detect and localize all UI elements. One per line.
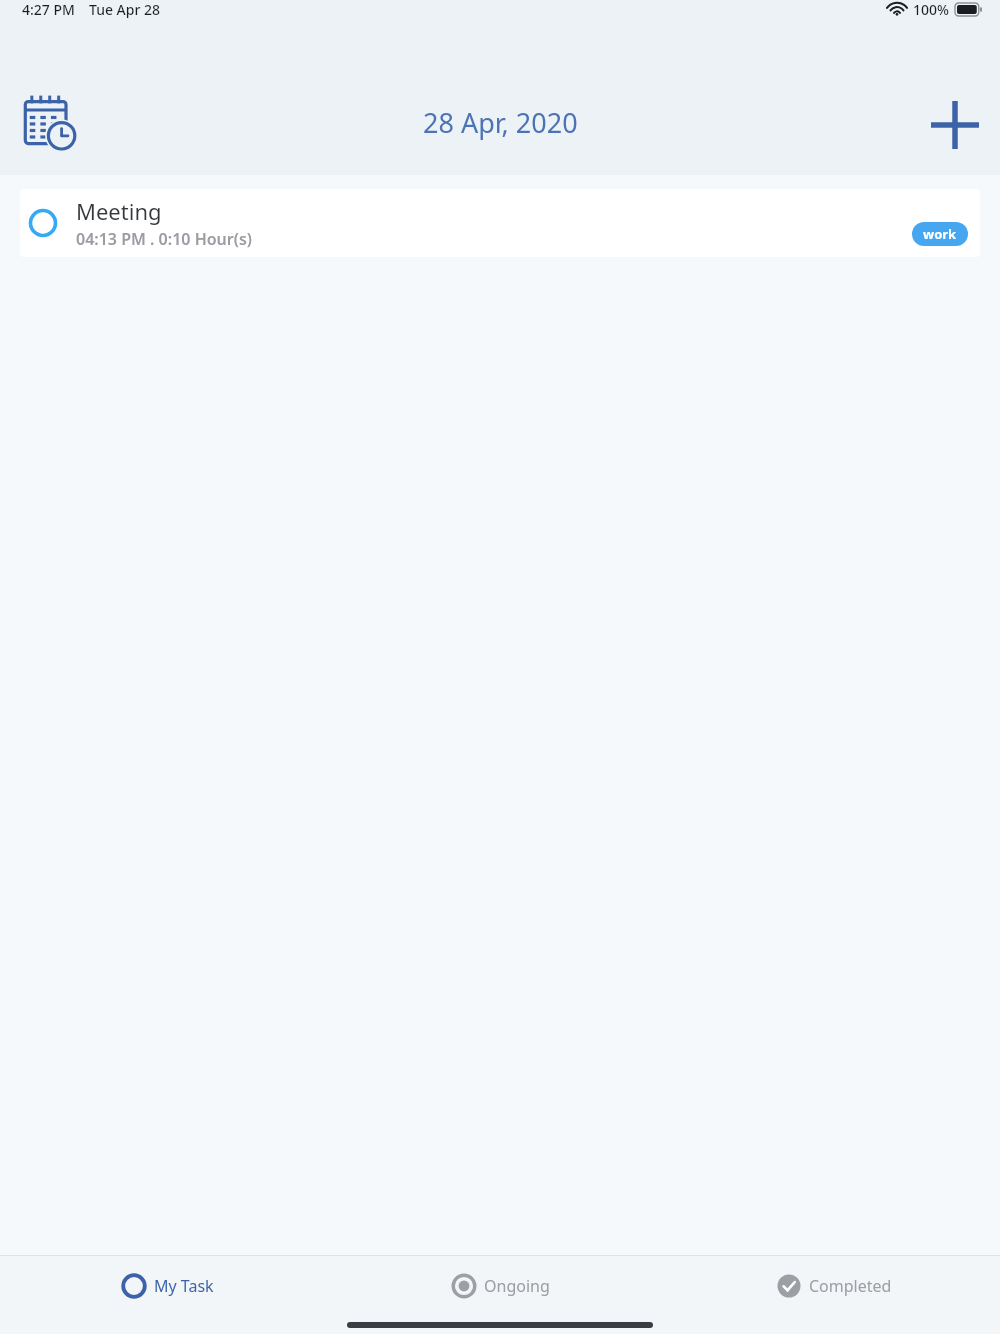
button[interactable]: Add task (920, 90, 990, 160)
button[interactable]: Completed (667, 1269, 1000, 1303)
staticText: My Task (154, 1275, 214, 1297)
button[interactable]: My Task (0, 1269, 334, 1303)
button[interactable]: Meeting (20, 189, 980, 257)
staticText: Tue Apr 28 (89, 0, 161, 19)
staticText: Ongoing (484, 1275, 550, 1297)
staticText: 28 Apr, 2020 (423, 104, 578, 141)
staticText: 100% (913, 0, 949, 19)
staticText: Meeting (76, 196, 162, 226)
staticText: 4:27 PM (22, 0, 75, 19)
staticText: 04:13 PM . 0:10 Hour(s) (76, 228, 253, 250)
staticText: work (923, 225, 957, 243)
button[interactable]: Calendar schedule (22, 92, 77, 152)
button[interactable]: Ongoing (334, 1269, 667, 1303)
staticText: Completed (809, 1275, 892, 1297)
